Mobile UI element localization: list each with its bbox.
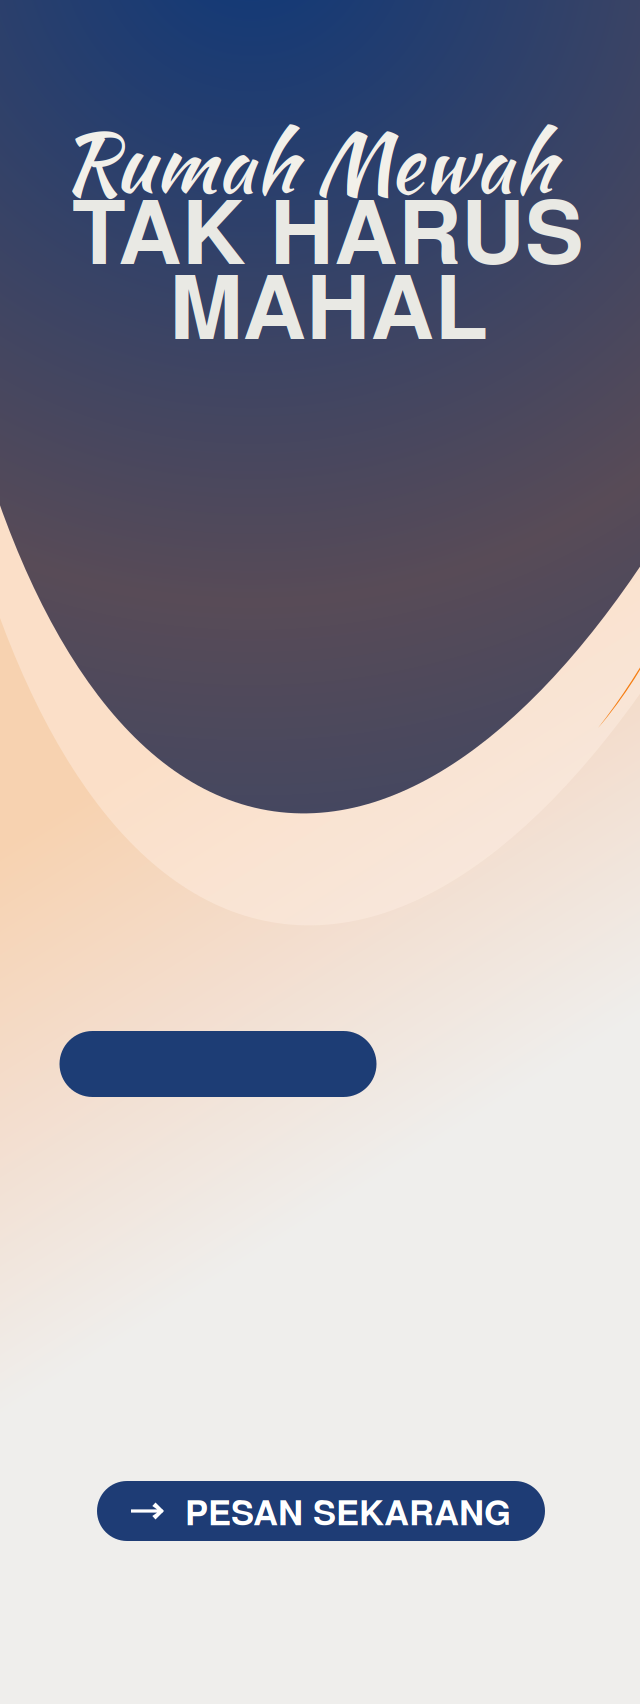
staticText: PESAN SEKARANG [185,1486,511,1536]
button[interactable]: PESAN SEKARANG [97,1481,545,1541]
staticText: Rumah Mewah [61,104,554,222]
button[interactable]: Promo card [59,1031,376,1097]
staticText: TAK HARUS [72,165,584,291]
staticText: MAHAL [169,240,488,366]
